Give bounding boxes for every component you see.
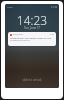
staticText: Reminders xyxy=(13,33,24,36)
staticText: Meeting with the design team at 3:00 PM xyxy=(10,36,54,39)
staticText: now xyxy=(50,33,54,36)
staticText: 14:23 xyxy=(7,6,13,9)
staticText: 14:23 xyxy=(5,12,59,28)
other: Signal, wifi and battery status xyxy=(51,6,57,8)
button[interactable]: slide to unlock xyxy=(5,78,59,82)
staticText: Tue, June 17 xyxy=(5,26,59,30)
staticText: Conference room B xyxy=(10,39,30,42)
button[interactable]: Reminders xyxy=(8,32,56,46)
